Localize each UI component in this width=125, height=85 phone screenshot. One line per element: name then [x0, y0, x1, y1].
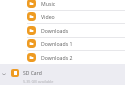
button[interactable]: Music	[0, 0, 125, 11]
staticText: Downloads 2	[41, 54, 73, 61]
staticText: Downloads 1	[41, 40, 73, 47]
staticText: Music	[41, 0, 56, 7]
button[interactable]: Collapse	[0, 68, 125, 84]
staticText: Downloads	[41, 27, 69, 34]
button[interactable]: Downloads 1	[0, 37, 125, 51]
button[interactable]: Downloads	[0, 24, 125, 38]
button[interactable]: Downloads 2	[0, 51, 125, 65]
staticText: Video	[41, 13, 55, 20]
button[interactable]: Video	[0, 10, 125, 24]
staticText: SD Card	[23, 70, 42, 77]
staticText: 5.35 GB available	[23, 79, 54, 84]
other: Collapse	[2, 71, 6, 77]
